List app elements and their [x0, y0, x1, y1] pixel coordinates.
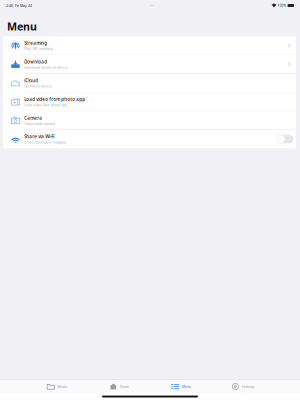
- staticText: Taken with camera: [24, 121, 55, 126]
- button[interactable]: Settings: [212, 380, 274, 393]
- button[interactable]: Menu: [150, 380, 212, 393]
- button[interactable]: Share via Wi-Fi: [276, 135, 293, 143]
- staticText: 100%: [277, 3, 286, 8]
- staticText: Settings: [242, 384, 255, 389]
- staticText: iCloud: [24, 78, 38, 84]
- staticText: Server function is stopped: [24, 140, 66, 145]
- staticText: Share: [120, 384, 129, 389]
- staticText: 2:46 Fri May 24: [6, 3, 32, 8]
- button[interactable]: iCloud: [3, 74, 296, 92]
- button[interactable]: Media: [26, 380, 88, 393]
- staticText: Share via Wi-Fi: [24, 134, 54, 140]
- button[interactable]: Share: [88, 380, 150, 393]
- staticText: Load video from photo app: [24, 96, 85, 102]
- staticText: Get file on device: [24, 84, 52, 88]
- button[interactable]: Share via Wi-Fi: [3, 130, 296, 148]
- staticText: Download media on device: [24, 65, 68, 70]
- staticText: Play URL remotely: [24, 47, 53, 51]
- button[interactable]: Streaming: [3, 36, 296, 55]
- staticText: Load video from photo app: [24, 103, 67, 107]
- staticText: Camera: [24, 115, 42, 121]
- staticText: Menu: [7, 19, 37, 33]
- staticText: Menu: [182, 384, 191, 389]
- staticText: Download: [24, 59, 47, 65]
- staticText: Media: [57, 384, 67, 389]
- button[interactable]: Load video from photo app: [3, 93, 296, 111]
- button[interactable]: Camera: [3, 111, 296, 129]
- staticText: Streaming: [24, 40, 47, 46]
- button[interactable]: Download: [3, 55, 296, 73]
